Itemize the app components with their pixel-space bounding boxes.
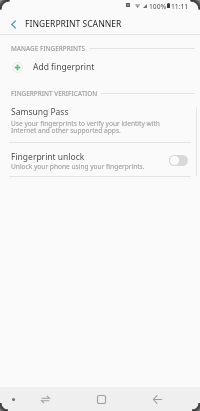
staticText: MANAGE FINGERPRINTS	[11, 44, 86, 53]
button[interactable]: Fingerprint unlock	[0, 146, 200, 176]
button[interactable]: Home	[87, 387, 115, 411]
staticText: FINGERPRINT SCANNER	[25, 18, 122, 30]
button[interactable]: Back	[143, 387, 171, 411]
button[interactable]: Fingerprint unlock	[169, 155, 188, 166]
staticText: 100%	[149, 2, 167, 11]
staticText: 11:11	[171, 2, 189, 11]
button[interactable]: Add fingerprint	[0, 56, 200, 78]
staticText: Use your fingerprints to verify your ide…	[11, 119, 160, 135]
staticText: Samsung Pass	[11, 106, 69, 118]
staticText: Fingerprint unlock	[11, 151, 85, 163]
button[interactable]: Navigate up	[4, 15, 22, 33]
staticText: FINGERPRINT VERIFICATION	[11, 89, 98, 98]
button[interactable]: Recents	[31, 387, 59, 411]
staticText: Unlock your phone using your fingerprint…	[11, 162, 145, 171]
button[interactable]: Samsung Pass	[0, 102, 200, 139]
staticText: Add fingerprint	[33, 61, 95, 73]
